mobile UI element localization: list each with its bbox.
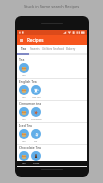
button[interactable]: Ice: [30, 129, 42, 143]
staticText: Seafood: [53, 47, 65, 51]
staticText: Cinnamon tea: [19, 101, 42, 105]
staticText: Chocolate Tea: [19, 145, 41, 149]
staticText: Ice: [34, 140, 38, 143]
staticText: Utilities: [42, 47, 53, 51]
button[interactable]: Tea: [18, 107, 30, 121]
staticText: Iced Tea: [19, 123, 32, 127]
button[interactable]: Tea: [17, 45, 29, 53]
button[interactable]: Utilities: [41, 45, 53, 53]
staticText: Tea: [22, 162, 26, 165]
button[interactable]: Tea: [18, 63, 30, 77]
staticText: Cocoa: [33, 162, 40, 165]
staticText: Recipes: [27, 37, 44, 43]
staticText: Tea: [22, 96, 26, 99]
button[interactable]: Tea: [18, 151, 30, 165]
staticText: Tea: [22, 74, 26, 77]
staticText: Milk Tea: [32, 96, 41, 99]
button[interactable]: Seafood: [53, 45, 65, 53]
staticText: Sweets: [30, 47, 40, 51]
staticText: Bakery: [66, 47, 76, 51]
button[interactable]: Bakery: [65, 45, 77, 53]
staticText: Cinnamon: [31, 118, 42, 121]
button[interactable]: Cocoa: [30, 151, 42, 165]
staticText: Stuck in Some search Recipes: [0, 4, 103, 9]
button[interactable]: Open navigation menu: [17, 36, 25, 44]
staticText: English Tea: [19, 79, 37, 83]
button[interactable]: Sweets: [29, 45, 41, 53]
staticText: Tea: [19, 57, 25, 61]
button[interactable]: Cinnamon: [30, 107, 42, 121]
staticText: Tea: [22, 118, 26, 121]
button[interactable]: Tea: [18, 129, 30, 143]
staticText: Tea: [21, 47, 26, 51]
button[interactable]: Tea: [18, 85, 30, 99]
staticText: Tea: [22, 140, 26, 143]
button[interactable]: Milk Tea: [30, 85, 42, 99]
